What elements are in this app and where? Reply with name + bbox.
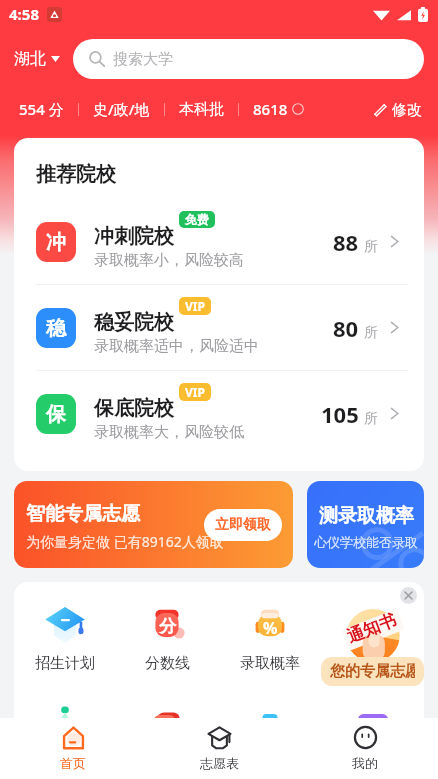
staticText: 保	[46, 402, 66, 427]
staticText: 保底院校	[94, 396, 174, 421]
staticText: 修改	[392, 101, 422, 117]
staticText: 本科批	[179, 100, 224, 119]
staticText: 为你量身定做 已有89162人领取	[26, 532, 224, 551]
button[interactable]: 保	[14, 371, 424, 456]
staticText: 录取概率适中，风险适中	[94, 337, 259, 356]
staticText: 测录取概率	[319, 504, 414, 528]
staticText: 4:58	[9, 4, 39, 24]
staticText: %	[263, 617, 278, 639]
staticText: 冲刺院校	[94, 224, 174, 249]
button[interactable]: 立即领取	[204, 509, 282, 541]
staticText: 搜索大学	[113, 50, 173, 69]
staticText: 您的专属志愿	[330, 662, 415, 681]
staticText: 554 分	[19, 99, 64, 119]
staticText: 所	[364, 324, 378, 342]
button[interactable]: 志愿表	[146, 718, 292, 779]
button[interactable]: 冲	[14, 199, 424, 284]
staticText: 所	[364, 410, 378, 428]
button[interactable]: 稳	[14, 285, 424, 370]
staticText: 88	[333, 227, 359, 257]
button[interactable]	[14, 704, 116, 754]
staticText: VIP	[185, 384, 205, 400]
staticText: 80	[333, 313, 359, 343]
staticText: 心仪学校能否录取	[314, 534, 418, 550]
button[interactable]: Close	[400, 587, 417, 604]
button[interactable]	[116, 704, 218, 754]
staticText: 所	[364, 238, 378, 256]
staticText: 稳	[46, 316, 66, 341]
staticText: 稳妥院校	[94, 310, 174, 335]
button[interactable]	[321, 704, 424, 754]
staticText: 招生计划	[35, 654, 95, 673]
staticText: 立即领取	[215, 516, 271, 534]
staticText: 我的	[352, 755, 378, 771]
button[interactable]: 湖北	[14, 43, 60, 75]
button[interactable]: 我的	[292, 718, 438, 779]
button[interactable]: 修改	[373, 98, 422, 120]
button[interactable]	[218, 704, 321, 754]
staticText: 冲	[46, 230, 66, 255]
staticText: 通知书	[344, 610, 399, 647]
button[interactable]: %	[218, 604, 321, 673]
button[interactable]: 测录取概率	[307, 481, 424, 568]
button[interactable]: 通知书	[321, 604, 424, 686]
staticText: 录取概率	[240, 654, 300, 673]
staticText: VIP	[185, 298, 205, 314]
staticText: 分数线	[145, 654, 190, 673]
staticText: 湖北	[14, 49, 46, 69]
button[interactable]: 首页	[0, 718, 146, 779]
staticText: 8618	[253, 99, 288, 119]
staticText: 免费	[185, 212, 209, 227]
staticText: 智能专属志愿	[26, 502, 140, 526]
staticText: 志愿表	[200, 755, 239, 771]
staticText: 录取概率小，风险较高	[94, 251, 244, 270]
staticText: 105	[321, 399, 359, 429]
staticText: 录取概率大，风险较低	[94, 423, 244, 442]
button[interactable]: 搜索大学	[73, 39, 424, 79]
staticText: 首页	[60, 755, 86, 771]
staticText: 分	[159, 616, 176, 637]
staticText: 推荐院校	[36, 162, 116, 187]
button[interactable]: 分	[116, 604, 218, 673]
button[interactable]: 招生计划	[14, 604, 116, 673]
button[interactable]: 554 分	[19, 99, 304, 119]
staticText: 史/政/地	[93, 99, 150, 119]
button[interactable]: 智能专属志愿	[14, 481, 293, 568]
